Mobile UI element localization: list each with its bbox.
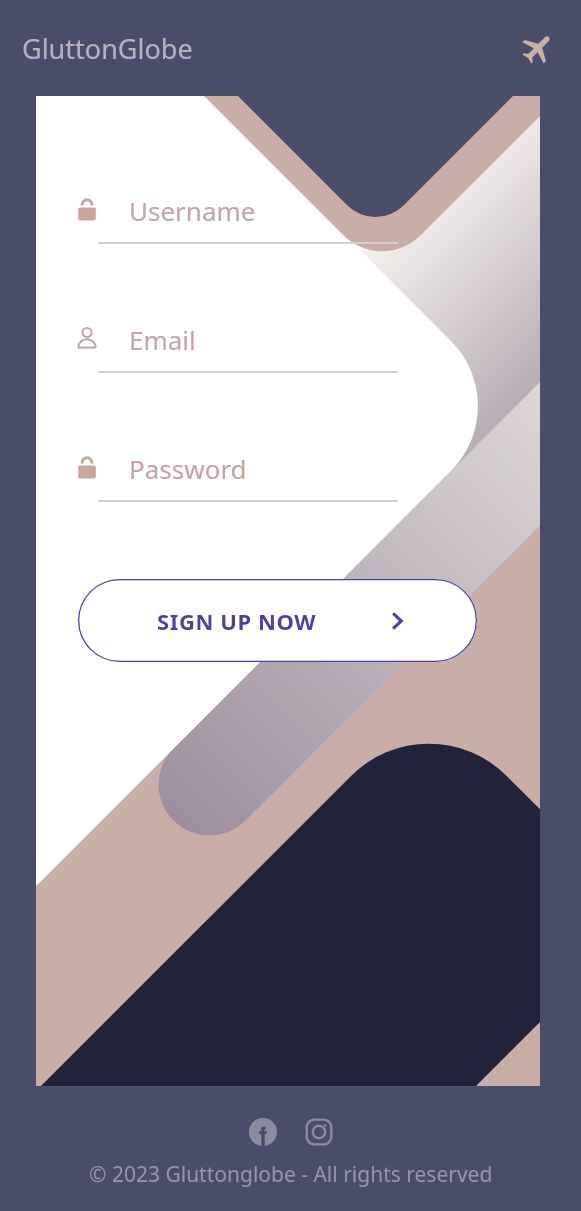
staticText: Email [129,322,196,357]
button[interactable]: Facebook [249,1118,277,1146]
staticText: Username [129,193,256,228]
button[interactable]: SIGN UP NOW [78,579,477,662]
staticText: GluttonGlobe [22,30,193,67]
button[interactable]: Instagram [305,1118,333,1146]
staticText: Password [129,451,247,486]
button[interactable]: Flights [517,27,559,69]
staticText: SIGN UP NOW [157,606,317,636]
staticText: © 2023 Gluttonglobe - All rights reserve… [89,1160,493,1189]
